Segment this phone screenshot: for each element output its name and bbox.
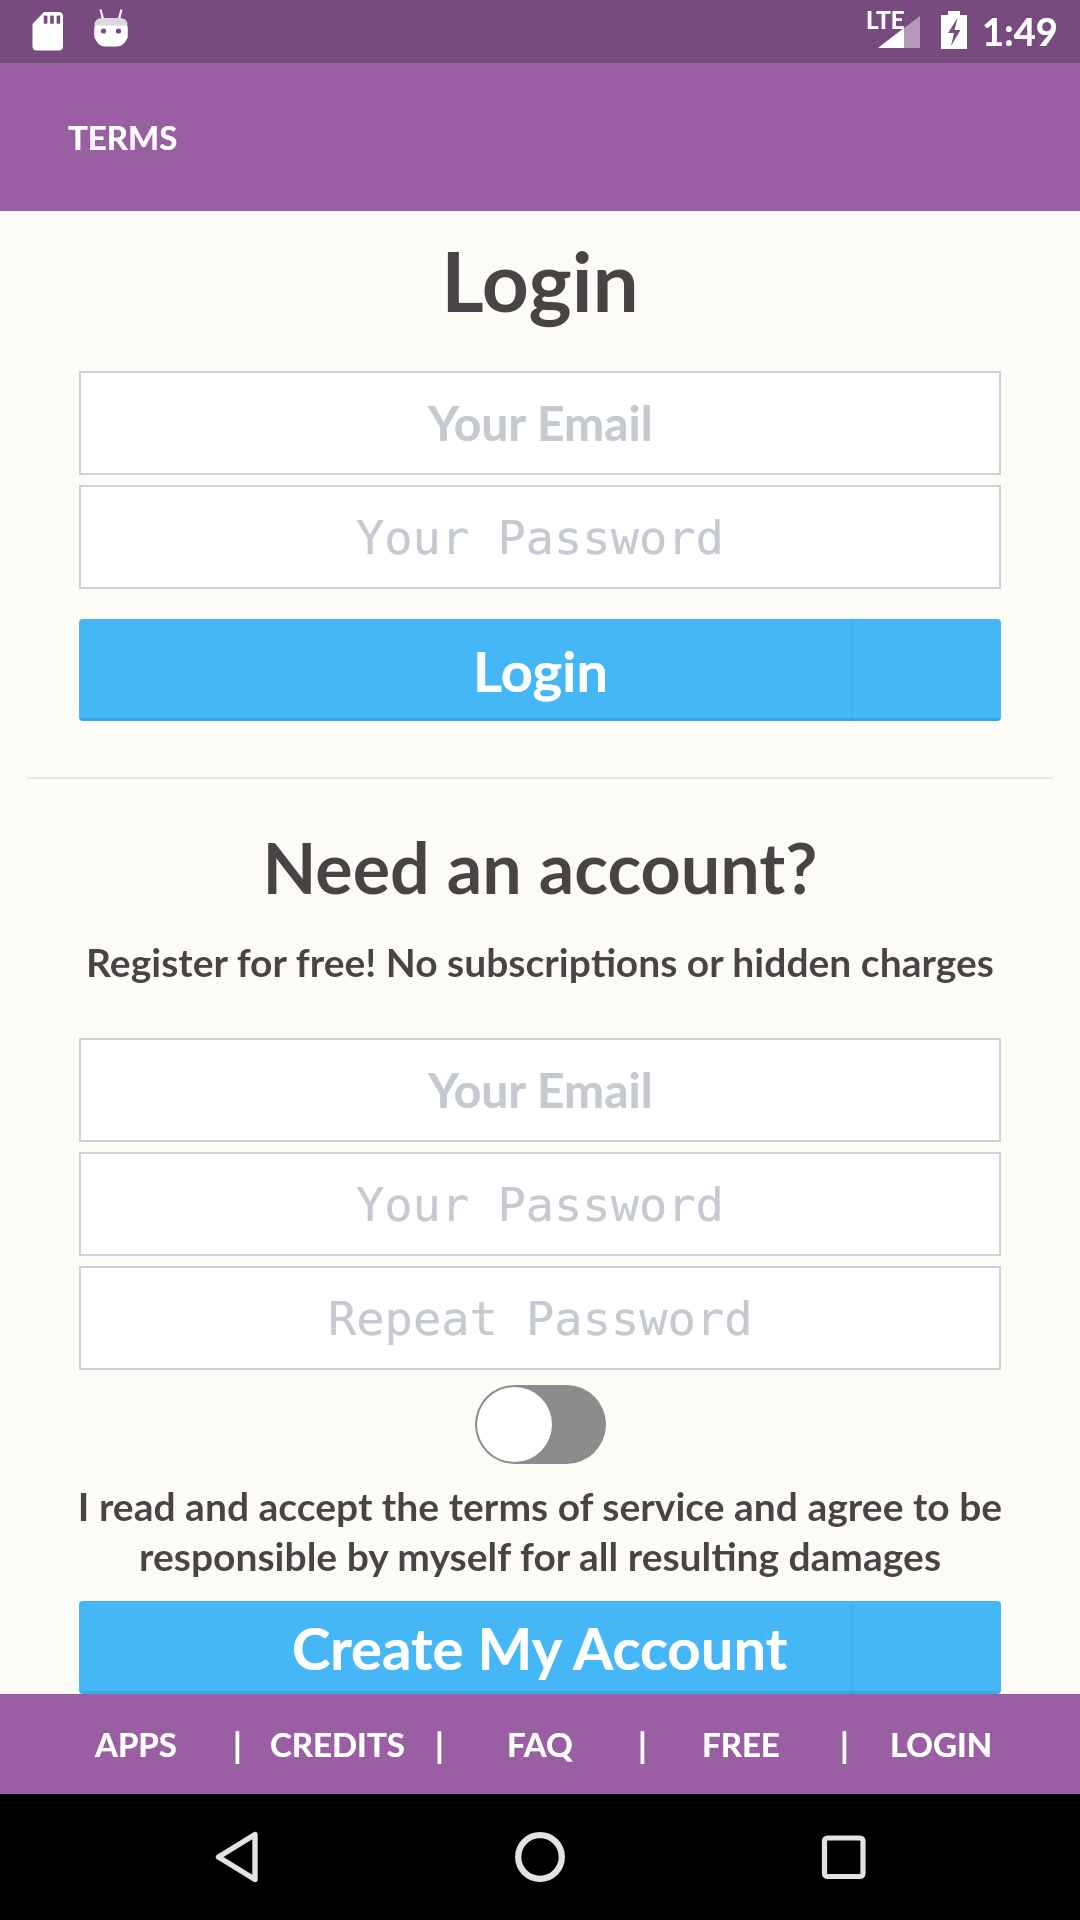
staticText: Your Password — [356, 510, 724, 565]
staticText: | — [840, 1724, 849, 1765]
staticText: | — [233, 1724, 242, 1765]
button[interactable]: Your Email — [79, 371, 1001, 475]
staticText: FAQ — [507, 1724, 573, 1764]
button[interactable]: TERMS — [0, 95, 208, 179]
staticText: Your Email — [428, 394, 653, 452]
staticText: FREE — [702, 1724, 780, 1764]
button[interactable]: CREDITS — [262, 1694, 412, 1794]
staticText: I read and accept the terms of service a… — [38, 1483, 1042, 1579]
staticText: Register for free! No subscriptions or h… — [0, 939, 1080, 986]
staticText: CREDITS — [270, 1724, 405, 1764]
button[interactable]: Your Password — [79, 485, 1001, 589]
staticText: Create My Account — [292, 1613, 788, 1683]
staticText: LOGIN — [890, 1724, 993, 1764]
button[interactable]: LOGIN — [866, 1694, 1016, 1794]
staticText: Your Email — [428, 1061, 653, 1119]
staticText: LTE — [866, 5, 905, 34]
staticText: Repeat Password — [328, 1291, 753, 1346]
staticText: 1:49 — [982, 8, 1058, 54]
button[interactable]: Repeat Password — [79, 1266, 1001, 1370]
button[interactable]: APPS — [61, 1694, 211, 1794]
button[interactable]: Login — [79, 619, 1001, 721]
staticText: | — [435, 1724, 444, 1765]
staticText: Login — [0, 231, 1080, 329]
staticText: Login — [473, 637, 608, 704]
button[interactable]: Your Email — [79, 1038, 1001, 1142]
button[interactable]: FAQ — [465, 1694, 615, 1794]
button[interactable]: Create My Account — [79, 1601, 1001, 1694]
staticText: Need an account? — [0, 825, 1080, 909]
staticText: Your Password — [356, 1177, 724, 1232]
staticText: APPS — [95, 1724, 177, 1764]
button[interactable]: FREE — [666, 1694, 816, 1794]
button[interactable]: Your Password — [79, 1152, 1001, 1256]
staticText: | — [638, 1724, 647, 1765]
button[interactable]: Accept terms of service — [475, 1385, 606, 1464]
